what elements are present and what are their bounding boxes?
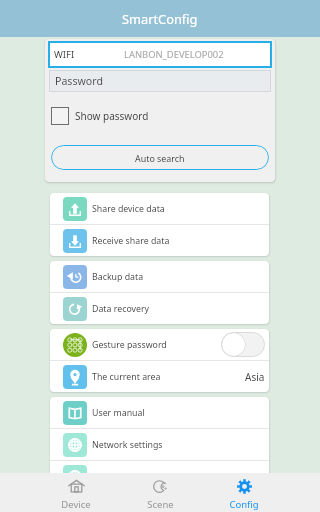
button[interactable]: Network settings — [50, 429, 269, 460]
button[interactable]: Share device data — [50, 193, 269, 224]
button[interactable]: Scene — [118, 473, 202, 512]
button[interactable]: Device — [34, 473, 118, 512]
staticText: Gesture password — [92, 339, 167, 351]
staticText: WIFI — [54, 48, 75, 61]
button[interactable]: Gesture password — [50, 329, 269, 360]
staticText: Show password — [75, 109, 149, 123]
staticText: Network settings — [92, 439, 163, 451]
button[interactable]: Auto search — [51, 145, 269, 170]
button[interactable]: WIFI — [48, 41, 272, 68]
staticText: Auto search — [135, 152, 185, 164]
button[interactable]: Password — [49, 70, 271, 92]
button[interactable]: Show password — [51, 107, 149, 125]
button[interactable]: Receive share data — [50, 225, 269, 256]
button[interactable]: Data recovery — [50, 293, 269, 324]
staticText: The current area — [92, 371, 161, 383]
staticText: Receive share data — [92, 235, 170, 247]
button[interactable]: The current area — [50, 361, 269, 392]
staticText: Data recovery — [92, 303, 150, 315]
staticText: Device — [61, 498, 91, 511]
staticText: Backup data — [92, 271, 144, 283]
staticText: About — [92, 471, 117, 483]
staticText: LANBON_DEVELOP002 — [124, 48, 224, 61]
button[interactable]: User manual — [50, 397, 269, 428]
button[interactable]: About — [50, 461, 269, 492]
staticText: Password — [55, 74, 103, 88]
button[interactable]: Gesture password toggle — [221, 332, 265, 357]
staticText: Scene — [147, 498, 174, 511]
staticText: SmartConfig — [122, 10, 198, 27]
staticText: User manual — [92, 407, 145, 419]
button[interactable]: Config — [202, 473, 286, 512]
staticText: Config — [229, 498, 259, 511]
staticText: Asia — [245, 370, 265, 384]
button[interactable]: Backup data — [50, 261, 269, 292]
staticText: Share device data — [92, 203, 165, 215]
